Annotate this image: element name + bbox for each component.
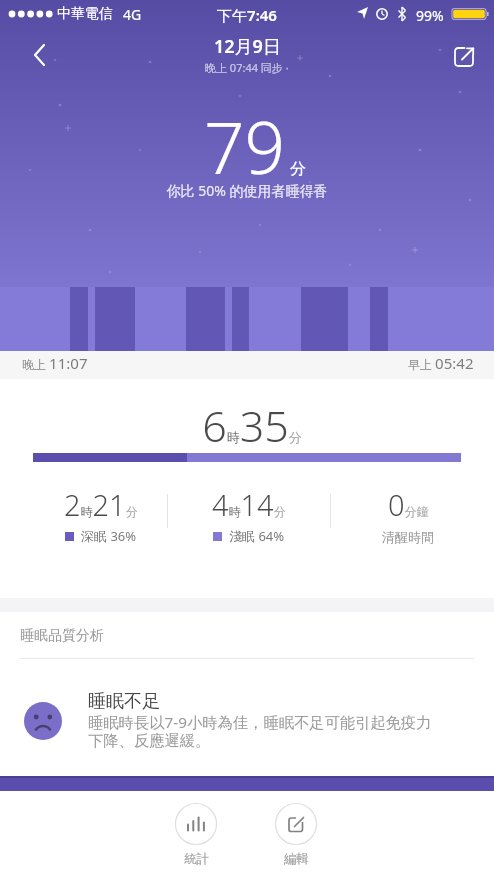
staticText: 分 <box>290 159 306 179</box>
staticText: 晚上 11:07 <box>22 353 88 373</box>
staticText: 79 <box>204 98 286 195</box>
staticText: 下午7:46 <box>0 5 494 25</box>
staticText: 晚上 07:44 同步 · <box>205 60 289 75</box>
staticText: 中華電信 <box>57 5 113 23</box>
button[interactable]: 統計 <box>160 796 232 876</box>
staticText: 你比 50% 的使用者睡得香 <box>0 181 494 200</box>
staticText: 睡眠不足 <box>88 690 160 713</box>
staticText: 睡眠品質分析 <box>20 627 104 645</box>
staticText: 6時35分 <box>5 396 494 455</box>
staticText: 統計 <box>184 851 209 867</box>
button[interactable] <box>446 38 482 74</box>
staticText: 早上 05:42 <box>408 353 474 373</box>
staticText: 深眠 36% <box>81 527 137 545</box>
staticText: 99% <box>416 6 444 25</box>
staticText: 12月9日 <box>214 34 281 59</box>
staticText: 0分鐘 <box>388 485 429 524</box>
button[interactable]: 編輯 <box>260 796 332 876</box>
staticText: 2時21分 <box>64 485 138 524</box>
button[interactable] <box>18 38 54 74</box>
staticText: 睡眠時長以7-9小時為佳，睡眠不足可能引起免疫力 下降、反應遲緩。 <box>88 712 432 751</box>
staticText: 編輯 <box>284 851 309 867</box>
staticText: 清醒時間 <box>382 529 434 545</box>
staticText: 4時14分 <box>212 485 286 524</box>
staticText: 4G <box>123 5 142 24</box>
staticText: 淺眠 64% <box>229 527 285 545</box>
